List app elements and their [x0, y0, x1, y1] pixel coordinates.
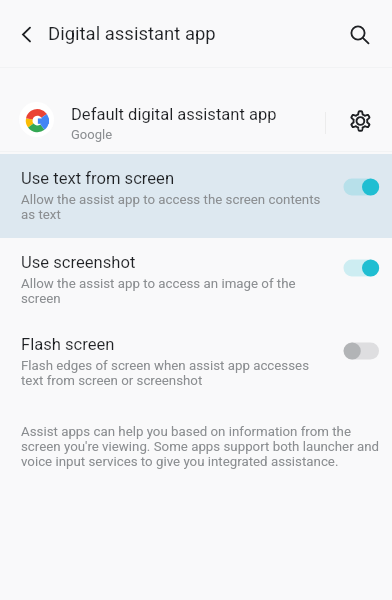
staticText: Google	[71, 127, 113, 142]
staticText: Use text from screen	[21, 169, 175, 188]
staticText: Use screenshot	[21, 253, 136, 272]
staticText: Assist apps can help you based on inform…	[21, 424, 381, 469]
staticText: Flash edges of screen when assist app ac…	[21, 358, 316, 388]
button[interactable]: Search	[338, 13, 378, 53]
staticText: Digital assistant app	[48, 23, 216, 45]
button[interactable]: Assistant settings	[340, 101, 380, 141]
button[interactable]: Off	[331, 337, 385, 365]
staticText: Default digital assistant app	[71, 105, 277, 124]
button[interactable]: On	[331, 254, 385, 282]
button[interactable]	[0, 321, 392, 404]
button[interactable]	[0, 154, 392, 238]
button[interactable]	[0, 68, 392, 151]
staticText: Flash screen	[21, 335, 115, 354]
staticText: Allow the assist app to access the scree…	[21, 192, 326, 222]
button[interactable]: Back	[6, 14, 46, 54]
button[interactable]	[0, 238, 392, 321]
staticText: Allow the assist app to access an image …	[21, 276, 306, 306]
button[interactable]: On	[331, 173, 385, 201]
